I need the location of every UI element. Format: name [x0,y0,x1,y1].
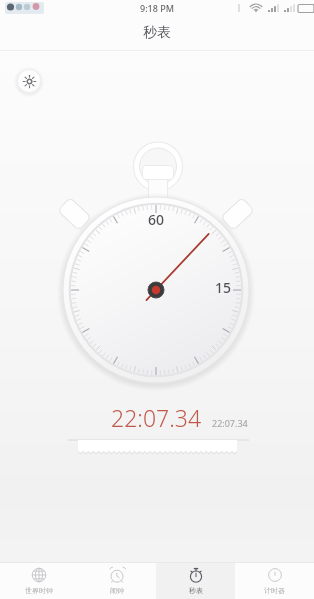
staticText: 22:07.34 [111,402,202,433]
button[interactable]: 世界时钟 [0,563,78,599]
button[interactable]: 闹钟 [78,563,156,599]
staticText: 9:18 PM [140,2,174,14]
staticText: 闹钟 [110,586,124,595]
button[interactable]: Brightness [15,67,43,95]
staticText: 秒表 [143,24,171,42]
staticText: 15 [215,278,232,297]
button[interactable]: 秒表 [156,563,235,599]
staticText: 60 [148,210,165,229]
staticText: 计时器 [264,586,285,595]
staticText: 秒表 [189,586,203,595]
staticText: 22:07.34 [212,417,248,429]
button[interactable]: 计时器 [235,563,314,599]
staticText: 世界时钟 [25,586,53,595]
